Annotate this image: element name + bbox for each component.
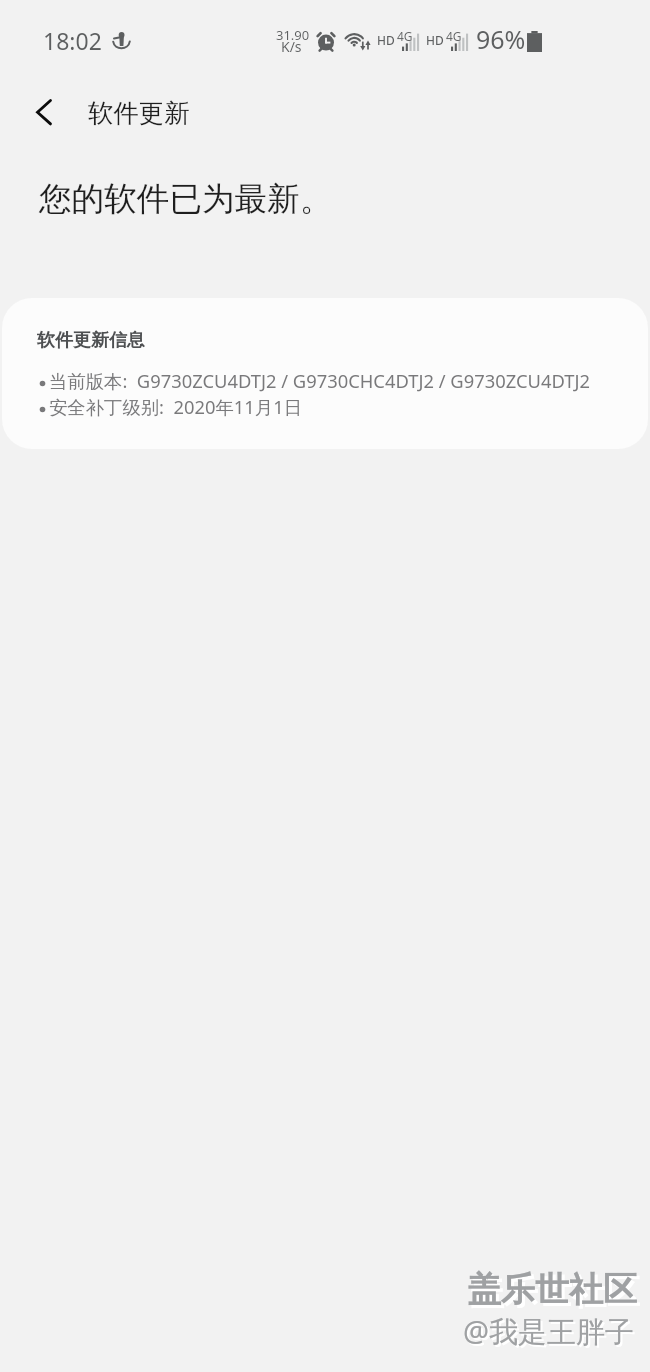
staticText: HD [377, 32, 395, 48]
staticText: 96% [476, 22, 526, 56]
staticText: 您的软件已为最新。 [39, 179, 333, 220]
staticText: HD [426, 32, 444, 48]
staticText: 当前版本: G9730ZCU4DTJ2 / G9730CHC4DTJ2 / G9… [49, 368, 591, 392]
staticText: K/s [281, 37, 302, 56]
staticText: 4G [397, 28, 413, 44]
staticText: 18:02 [43, 25, 102, 56]
staticText: 软件更新 [88, 98, 190, 130]
button[interactable]: Back [20, 89, 66, 135]
staticText: @我是王胖子 [464, 1313, 636, 1353]
staticText: 软件更新信息 [37, 329, 145, 352]
staticText: 31.90 [276, 26, 310, 44]
staticText: @我是王胖子 [462, 1311, 634, 1351]
button[interactable]: 软件更新信息 [2, 298, 648, 449]
staticText: 4G [446, 28, 462, 44]
staticText: 盖乐世社区 [467, 1268, 637, 1311]
staticText: 盖乐世社区 [470, 1271, 640, 1314]
staticText: 安全补丁级别: 2020年11月1日 [49, 394, 302, 418]
